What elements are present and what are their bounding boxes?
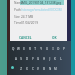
staticText: 24.7 MB: [21, 15, 34, 19]
staticText: Name: [14, 1, 23, 5]
staticText: R: [29, 47, 31, 51]
staticText: OK: [52, 36, 57, 40]
staticText: S: [20, 57, 22, 61]
staticText: L: [60, 57, 62, 61]
staticText: P: [63, 47, 65, 51]
staticText: Size: [14, 15, 20, 19]
staticText: G: [37, 57, 39, 61]
staticText: V: [37, 67, 39, 71]
staticText: O: [57, 47, 59, 51]
staticText: 01/04/2019: [21, 21, 38, 25]
staticText: N: [49, 67, 51, 71]
staticText: Z: [20, 67, 22, 71]
staticText: X: [26, 67, 28, 71]
staticText: W: [17, 47, 19, 51]
button[interactable]: CANCEL: [19, 36, 32, 40]
staticText: D: [26, 57, 28, 61]
other: Shift: [11, 66, 14, 69]
staticText: J: [49, 57, 51, 61]
staticText: M: [54, 67, 56, 71]
staticText: E: [23, 47, 25, 51]
staticText: A: [15, 57, 17, 61]
staticText: H: [43, 57, 45, 61]
staticText: K: [54, 57, 56, 61]
button[interactable]: OK: [52, 36, 57, 40]
staticText: I: [52, 47, 54, 51]
staticText: /storage/emulated/0/DCIM: [21, 8, 62, 12]
staticText: Path: [14, 8, 21, 12]
staticText: CANCEL: [19, 36, 32, 40]
staticText: B: [43, 67, 45, 71]
staticText: IMG_20190104_131238.jpg: [21, 1, 62, 5]
staticText: Y: [40, 47, 42, 51]
staticText: T: [34, 47, 36, 51]
staticText: F: [32, 57, 34, 61]
staticText: Q: [12, 47, 14, 51]
staticText: U: [46, 47, 48, 51]
staticText: Time: [14, 21, 22, 25]
staticText: C: [32, 67, 34, 71]
